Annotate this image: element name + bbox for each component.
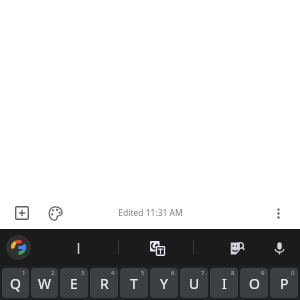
button[interactable]: T — [120, 268, 148, 298]
staticText: 5 — [141, 269, 145, 277]
staticText: R — [100, 274, 109, 293]
button[interactable]: R — [90, 268, 118, 298]
button[interactable]: P — [270, 268, 298, 298]
button[interactable]: More options — [264, 199, 292, 227]
button[interactable]: W — [31, 268, 58, 298]
staticText: 3 — [81, 269, 85, 277]
button[interactable]: Text cursor — [65, 235, 91, 261]
button[interactable]: U — [180, 268, 208, 298]
staticText: Y — [160, 274, 168, 293]
staticText: P — [280, 274, 289, 293]
button[interactable]: Edited 11:31 AM — [118, 207, 183, 219]
button[interactable]: Change colour — [41, 199, 69, 227]
staticText: 8 — [231, 269, 235, 277]
staticText: 6 — [171, 269, 175, 277]
staticText: E — [70, 274, 78, 293]
staticText: O — [249, 274, 260, 293]
staticText: W — [38, 274, 52, 293]
button[interactable]: Google search — [6, 235, 31, 260]
staticText: Q — [10, 274, 21, 293]
staticText: 1 — [22, 269, 26, 277]
staticText: U — [189, 274, 200, 293]
button[interactable]: E — [60, 268, 88, 298]
button[interactable]: Translate — [144, 235, 170, 261]
button[interactable]: O — [240, 268, 268, 298]
staticText: I — [222, 274, 227, 293]
staticText: Edited 11:31 AM — [118, 207, 183, 219]
staticText: T — [130, 274, 138, 293]
button[interactable]: I — [210, 268, 238, 298]
button[interactable]: Stickers — [224, 235, 250, 261]
staticText: 4 — [111, 269, 115, 277]
staticText: 0 — [291, 269, 295, 277]
button[interactable]: Add — [8, 199, 36, 227]
staticText: 2 — [51, 269, 55, 277]
button[interactable]: Q — [2, 268, 29, 298]
button[interactable]: Voice input — [266, 235, 292, 261]
button[interactable]: Y — [150, 268, 178, 298]
staticText: 7 — [201, 269, 205, 277]
staticText: 9 — [261, 269, 265, 277]
